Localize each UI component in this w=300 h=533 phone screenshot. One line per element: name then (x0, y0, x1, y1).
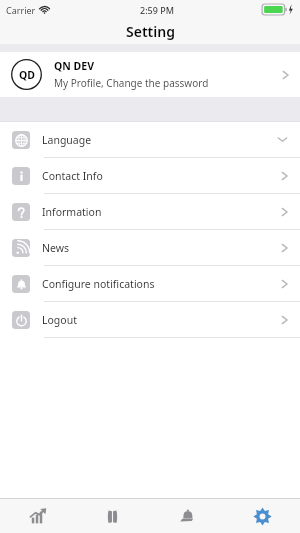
button[interactable]: Logout (0, 302, 300, 337)
button[interactable]: Configure notifications (0, 266, 300, 301)
staticText: Setting (126, 22, 175, 41)
button[interactable]: News (0, 230, 300, 265)
button[interactable]: Statistics (0, 499, 75, 533)
button[interactable]: Settings (225, 499, 300, 533)
button[interactable]: Information (0, 194, 300, 229)
button[interactable]: Notifications (150, 499, 225, 533)
staticText: Information (42, 205, 102, 219)
staticText: 2:59 PM (140, 4, 174, 16)
button[interactable]: Contact Info (0, 158, 300, 193)
staticText: Logout (42, 313, 77, 327)
staticText: QN DEV (54, 59, 94, 73)
staticText: Language (42, 133, 92, 147)
staticText: My Profile, Change the password (54, 76, 209, 90)
staticText: Contact Info (42, 169, 103, 183)
button[interactable]: Map (75, 499, 150, 533)
staticText: Configure notifications (42, 277, 155, 291)
staticText: News (42, 241, 69, 255)
button[interactable]: QD (0, 52, 300, 97)
button[interactable]: Language (0, 122, 300, 157)
staticText: Carrier (6, 4, 36, 16)
staticText: QD (19, 68, 35, 82)
